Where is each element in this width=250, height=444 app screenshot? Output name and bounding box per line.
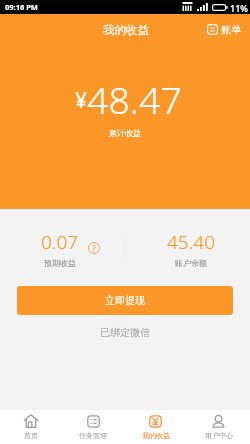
button[interactable]: 我的收益 bbox=[124, 410, 187, 444]
button[interactable]: 45.40 bbox=[145, 229, 237, 268]
staticText: 我的收益 bbox=[142, 431, 170, 440]
staticText: 我的收益 bbox=[103, 23, 149, 37]
staticText: 45.40 bbox=[167, 229, 216, 255]
staticText: 累计收益 bbox=[0, 128, 250, 138]
staticText: 预期收益 bbox=[44, 258, 76, 268]
staticText: 账单 bbox=[221, 23, 241, 36]
staticText: ¥ bbox=[75, 86, 88, 115]
staticText: 48.47 bbox=[87, 74, 182, 125]
staticText: 账户余额 bbox=[175, 258, 207, 268]
staticText: 11% bbox=[230, 2, 248, 14]
staticText: ? bbox=[92, 242, 96, 254]
button[interactable]: 预期收益说明 bbox=[88, 242, 100, 254]
staticText: 立即提现 bbox=[105, 294, 145, 307]
button[interactable]: 立即提现 bbox=[17, 286, 233, 315]
staticText: 已绑定微信 bbox=[0, 326, 250, 339]
staticText: 0.07 bbox=[41, 229, 79, 255]
button[interactable]: 任务管理 bbox=[62, 410, 124, 444]
button[interactable]: 首页 bbox=[0, 410, 62, 444]
button[interactable]: 用户中心 bbox=[187, 410, 250, 444]
staticText: 用户中心 bbox=[205, 431, 233, 440]
staticText: 09:16 PM bbox=[5, 2, 38, 12]
staticText: 首页 bbox=[24, 431, 38, 440]
staticText: 任务管理 bbox=[79, 431, 107, 440]
button[interactable]: 0.07 bbox=[14, 229, 106, 268]
button[interactable]: 账单 bbox=[207, 23, 241, 36]
